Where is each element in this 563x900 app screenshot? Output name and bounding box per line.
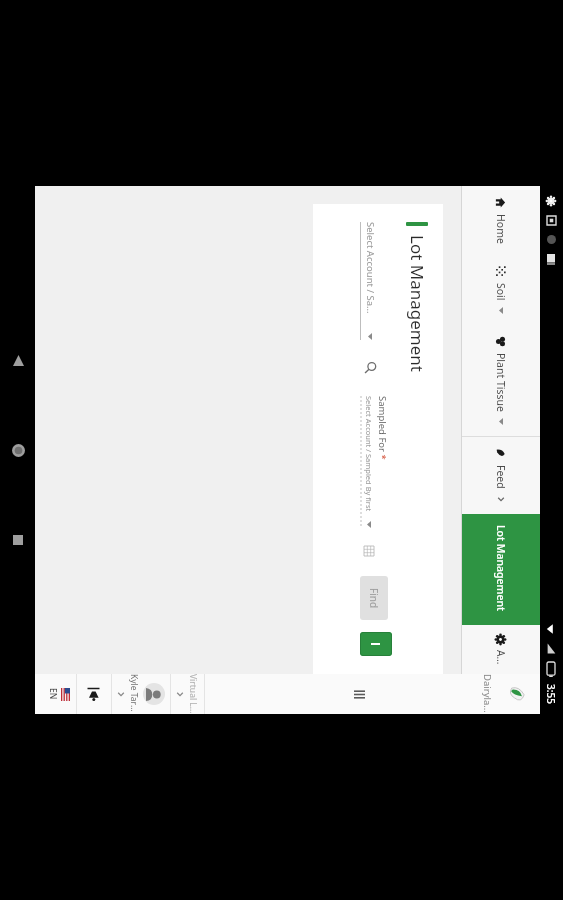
button[interactable]: Sampled For	[360, 396, 389, 528]
button[interactable]: EN	[41, 674, 76, 714]
button[interactable]: Select Account / Sa...	[360, 222, 377, 340]
staticText: Dairyland	[481, 674, 494, 714]
staticText: Home	[494, 214, 508, 244]
button[interactable]: Admin	[462, 625, 540, 674]
staticText: Feed	[494, 465, 508, 489]
button[interactable]: Open picker	[360, 542, 378, 560]
staticText: Lot Management	[406, 235, 429, 372]
button[interactable]: Kyle Tarpom	[112, 674, 170, 714]
button[interactable]: Lot Management	[462, 514, 540, 625]
staticText: EN	[47, 688, 59, 700]
button[interactable]: Search	[360, 356, 382, 378]
staticText: Soil	[494, 283, 508, 301]
staticText: Find	[367, 588, 381, 609]
button[interactable]: Home	[462, 186, 540, 255]
button[interactable]: Announcements	[77, 674, 111, 714]
button[interactable]: Dairyland	[477, 674, 499, 714]
button[interactable]: Soil	[462, 255, 540, 325]
button[interactable]: Home	[1, 433, 35, 467]
staticText: *	[376, 452, 389, 460]
button[interactable]: Plant Tissue	[462, 325, 540, 436]
staticText: Virtual Lab	[187, 674, 199, 714]
staticText: 3:55	[544, 684, 558, 704]
staticText: Kyle Tarpom	[128, 674, 140, 714]
staticText: Lot Management	[494, 525, 508, 612]
button[interactable]: Recent apps	[1, 523, 35, 557]
button[interactable]: Dairyland	[499, 676, 535, 712]
staticText: Admin	[494, 650, 508, 665]
button[interactable]: Find	[360, 576, 388, 620]
staticText: Plant Tissue	[494, 353, 508, 412]
staticText: Sampled For	[376, 396, 389, 452]
button[interactable]: Virtual Lab	[171, 674, 204, 714]
button[interactable]: Feed	[462, 437, 540, 514]
button[interactable]: Add	[360, 632, 392, 656]
staticText: Select Account / Sampled By first	[364, 396, 374, 521]
button[interactable]: Back	[1, 343, 35, 377]
button[interactable]: Menu	[347, 674, 373, 714]
staticText: Select Account / Sa...	[364, 222, 377, 333]
